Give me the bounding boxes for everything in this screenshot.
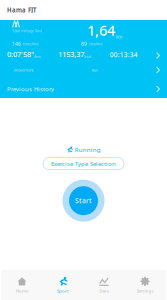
staticText: 1,64 [87, 20, 115, 40]
button[interactable]: Settings [124, 270, 165, 300]
staticText: Exercise Type Selection [51, 160, 116, 168]
staticText: 0:07'58" [7, 49, 34, 59]
staticText: Data [99, 288, 108, 294]
staticText: Movement [14, 67, 33, 73]
staticText: Run [91, 67, 97, 73]
staticText: 146 [12, 41, 21, 47]
staticText: Total mileage (km) [12, 28, 42, 33]
staticText: times/min [22, 42, 38, 46]
button[interactable]: Data [83, 270, 124, 300]
staticText: Home [16, 288, 28, 294]
staticText: Sport [57, 288, 69, 294]
staticText: 1153,37 [58, 49, 84, 59]
button[interactable]: Start [61, 179, 105, 223]
staticText: Start [75, 196, 92, 205]
staticText: Hama FIT [7, 6, 36, 14]
staticText: Running [75, 145, 101, 154]
staticText: Settings [136, 288, 153, 294]
staticText: 89 [81, 41, 87, 47]
staticText: step/min [88, 42, 102, 46]
staticText: km [116, 34, 122, 40]
staticText: 00:13:34 [110, 50, 138, 59]
staticText: /km [34, 54, 40, 59]
staticText: kcal [84, 54, 91, 59]
button[interactable]: Home [1, 270, 42, 300]
button[interactable]: Sport [42, 270, 83, 300]
button[interactable]: Exercise Type Selection [43, 158, 124, 170]
staticText: Previous History [7, 85, 54, 93]
